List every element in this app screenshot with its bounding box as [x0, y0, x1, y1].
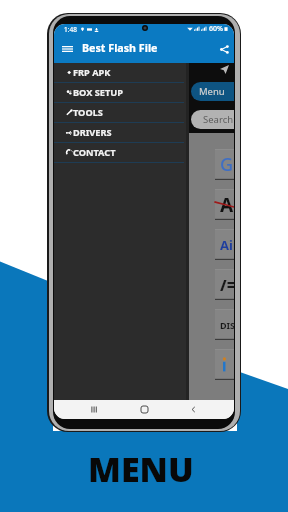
staticText: Best Flash File — [82, 41, 158, 56]
staticText: /= — [220, 275, 234, 295]
staticText: A — [220, 192, 234, 218]
button[interactable]: Open navigation menu — [60, 42, 74, 56]
staticText: 60% — [209, 24, 223, 34]
staticText: BOX SETUP — [73, 86, 123, 99]
button[interactable]: DISC — [215, 309, 234, 340]
staticText: CONTACT — [73, 146, 116, 159]
staticText: DISC — [220, 319, 234, 331]
button[interactable]: Air — [215, 229, 234, 260]
button[interactable]: Recent apps — [85, 400, 104, 419]
button[interactable]: A — [215, 189, 234, 220]
staticText: DRIVERS — [73, 126, 112, 139]
button[interactable]: G — [215, 149, 234, 180]
button[interactable]: Home — [135, 400, 154, 419]
staticText: FRP APK — [73, 66, 111, 79]
button[interactable]: FRP APK — [54, 63, 186, 82]
button[interactable]: TOOLS — [54, 103, 186, 122]
staticText: G — [220, 152, 234, 177]
staticText: TOOLS — [73, 106, 103, 119]
button[interactable]: Share — [216, 41, 232, 57]
button[interactable]: BOX SETUP — [54, 83, 186, 102]
staticText: MENU — [88, 446, 194, 492]
button[interactable]: /= — [215, 269, 234, 300]
button[interactable]: Back — [184, 400, 203, 419]
staticText: 1:48 — [64, 25, 77, 34]
staticText: Air — [220, 236, 234, 254]
staticText: Menu — [199, 85, 225, 98]
button[interactable]: DRIVERS — [54, 123, 186, 142]
button[interactable] — [215, 349, 234, 380]
button[interactable]: Menu — [191, 82, 234, 101]
staticText: Search he — [203, 113, 234, 126]
button[interactable]: CONTACT — [54, 143, 186, 162]
button[interactable]: Search he — [191, 110, 234, 129]
